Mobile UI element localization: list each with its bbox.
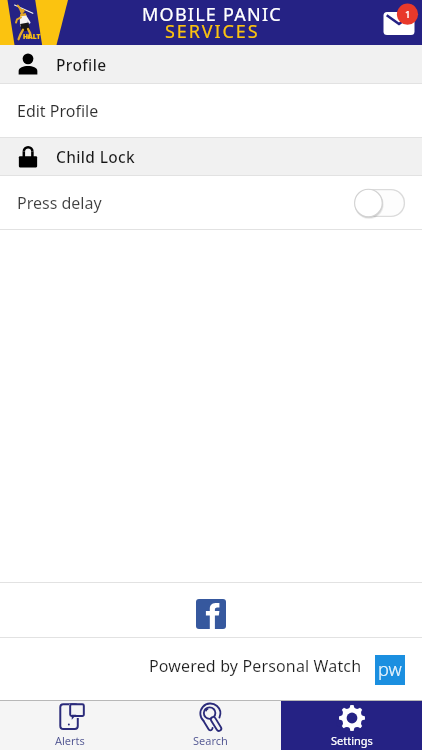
staticText: Alerts — [55, 733, 85, 748]
button[interactable]: Facebook — [196, 599, 226, 629]
staticText: 1 — [405, 8, 411, 21]
staticText: Child Lock — [56, 146, 136, 167]
staticText: SERVICES — [165, 19, 260, 44]
button[interactable]: Child Lock — [0, 138, 422, 175]
button[interactable]: Search — [140, 701, 281, 750]
button[interactable]: Alerts — [0, 701, 140, 750]
staticText: Profile — [56, 54, 107, 75]
staticText: MOBILE PANIC — [142, 2, 282, 27]
button[interactable]: Edit Profile — [0, 84, 422, 137]
staticText: Settings — [331, 733, 373, 748]
staticText: Powered by Personal Watch — [149, 655, 362, 677]
button[interactable]: Press delay — [0, 176, 422, 229]
button[interactable]: Personal Watch — [375, 655, 405, 685]
button[interactable]: Profile — [0, 45, 422, 83]
button[interactable]: Press delay toggle — [354, 187, 406, 219]
staticText: pw — [378, 657, 402, 682]
staticText: Press delay — [17, 192, 102, 214]
button[interactable]: Messages — [381, 0, 422, 45]
staticText: HALT — [23, 32, 41, 41]
staticText: Edit Profile — [17, 100, 99, 122]
button[interactable]: Settings — [281, 701, 422, 750]
staticText: Search — [193, 733, 228, 748]
